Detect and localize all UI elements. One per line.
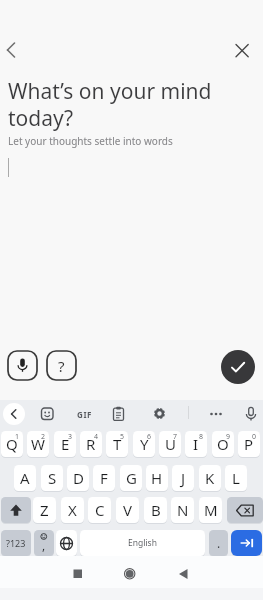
- button[interactable]: .: [209, 530, 228, 556]
- staticText: B: [151, 500, 161, 520]
- staticText: 5: [120, 432, 125, 442]
- staticText: 6: [147, 432, 152, 442]
- button[interactable]: [40, 407, 54, 421]
- staticText: T: [113, 434, 122, 454]
- button[interactable]: [7, 350, 38, 381]
- button[interactable]: [231, 530, 262, 556]
- staticText: ?: [58, 356, 65, 376]
- button[interactable]: [67, 563, 88, 584]
- button[interactable]: [232, 40, 252, 60]
- staticText: Y: [140, 434, 149, 454]
- staticText: ?123: [6, 537, 26, 549]
- staticText: L: [232, 468, 240, 488]
- button[interactable]: L: [225, 465, 247, 491]
- staticText: V: [123, 500, 133, 520]
- button[interactable]: N: [171, 497, 194, 523]
- button[interactable]: H: [146, 465, 168, 491]
- staticText: G: [126, 468, 137, 488]
- button[interactable]: Q: [1, 431, 23, 457]
- button[interactable]: S: [41, 465, 63, 491]
- button[interactable]: [173, 563, 194, 584]
- staticText: E: [61, 434, 70, 454]
- staticText: Let your thoughts settle into words: [8, 134, 173, 148]
- staticText: H: [151, 468, 163, 488]
- button[interactable]: Z: [33, 497, 56, 523]
- staticText: J: [181, 468, 186, 488]
- staticText: F: [100, 468, 108, 488]
- button[interactable]: M: [199, 497, 222, 523]
- staticText: ,: [42, 537, 46, 553]
- staticText: W: [31, 434, 45, 454]
- staticText: S: [48, 468, 57, 488]
- button[interactable]: [207, 406, 225, 422]
- staticText: O: [217, 434, 229, 454]
- staticText: 4: [94, 432, 99, 442]
- button[interactable]: Y: [133, 431, 155, 457]
- button[interactable]: [221, 350, 255, 384]
- staticText: 1: [15, 432, 20, 442]
- button[interactable]: [3, 403, 25, 425]
- button[interactable]: [1, 497, 31, 523]
- button[interactable]: [243, 405, 259, 423]
- button[interactable]: English: [80, 530, 205, 556]
- button[interactable]: P: [238, 431, 260, 457]
- staticText: GIF: [77, 409, 93, 420]
- button[interactable]: D: [67, 465, 89, 491]
- button[interactable]: V: [116, 497, 139, 523]
- staticText: N: [177, 500, 189, 520]
- staticText: 2: [41, 432, 46, 442]
- staticText: U: [165, 434, 176, 454]
- staticText: Z: [40, 500, 49, 520]
- staticText: 0: [252, 432, 257, 442]
- staticText: 9: [226, 432, 231, 442]
- staticText: D: [73, 468, 84, 488]
- button[interactable]: ?: [46, 350, 77, 381]
- staticText: M: [204, 500, 218, 520]
- button[interactable]: F: [93, 465, 115, 491]
- staticText: 7: [173, 432, 178, 442]
- button[interactable]: C: [88, 497, 111, 523]
- button[interactable]: I: [185, 431, 207, 457]
- staticText: I: [193, 434, 199, 454]
- button[interactable]: ?123: [1, 530, 31, 556]
- button[interactable]: G: [120, 465, 142, 491]
- button[interactable]: B: [144, 497, 167, 523]
- staticText: 3: [68, 432, 73, 442]
- staticText: K: [205, 468, 215, 488]
- button[interactable]: E: [54, 431, 76, 457]
- button[interactable]: W: [27, 431, 49, 457]
- staticText: .: [217, 535, 221, 551]
- button[interactable]: [111, 406, 126, 422]
- button[interactable]: O: [212, 431, 234, 457]
- staticText: X: [68, 500, 77, 520]
- button[interactable]: GIF: [74, 406, 95, 422]
- staticText: C: [95, 500, 105, 520]
- button[interactable]: R: [80, 431, 102, 457]
- staticText: 8: [199, 432, 204, 442]
- staticText: P: [244, 434, 254, 454]
- staticText: Q: [6, 434, 18, 454]
- button[interactable]: ,: [34, 530, 54, 556]
- button[interactable]: [1, 40, 21, 60]
- button[interactable]: A: [14, 465, 36, 491]
- button[interactable]: J: [172, 465, 194, 491]
- button[interactable]: K: [199, 465, 221, 491]
- button[interactable]: [227, 497, 263, 523]
- button[interactable]: U: [159, 431, 181, 457]
- button[interactable]: X: [61, 497, 84, 523]
- button[interactable]: [119, 563, 140, 584]
- staticText: English: [128, 537, 157, 549]
- button[interactable]: T: [106, 431, 128, 457]
- staticText: A: [20, 468, 30, 488]
- staticText: R: [86, 434, 96, 454]
- button[interactable]: [56, 530, 77, 556]
- button[interactable]: [152, 406, 167, 421]
- staticText: What’s on your mind today?: [8, 77, 212, 132]
